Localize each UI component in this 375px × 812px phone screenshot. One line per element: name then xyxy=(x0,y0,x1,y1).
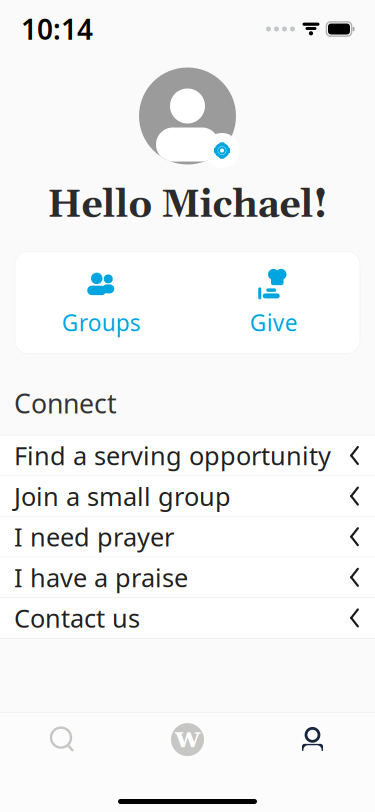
staticText: Connect xyxy=(14,385,117,421)
staticText: Hello Michael! xyxy=(47,182,327,229)
button[interactable]: Profile xyxy=(250,716,375,764)
button[interactable]: Find a serving opportunity xyxy=(0,435,375,476)
staticText: I have a praise xyxy=(14,560,188,594)
staticText: Groups xyxy=(62,307,141,337)
button[interactable]: Home xyxy=(125,712,250,767)
button[interactable]: Groups xyxy=(15,255,187,349)
button[interactable]: Search xyxy=(0,715,125,765)
staticText: Find a serving opportunity xyxy=(14,439,331,472)
button[interactable]: Join a small group xyxy=(0,476,375,517)
staticText: I need prayer xyxy=(14,520,174,553)
staticText: Contact us xyxy=(14,601,140,635)
button[interactable]: Give xyxy=(187,255,360,349)
button[interactable]: Contact us xyxy=(0,598,375,638)
button[interactable]: Settings xyxy=(204,133,239,168)
button[interactable]: I have a praise xyxy=(0,557,375,598)
staticText: 10:14 xyxy=(21,10,93,48)
staticText: Join a small group xyxy=(14,479,231,513)
button[interactable]: I need prayer xyxy=(0,517,375,557)
staticText: w xyxy=(175,720,200,757)
staticText: Give xyxy=(250,307,298,337)
